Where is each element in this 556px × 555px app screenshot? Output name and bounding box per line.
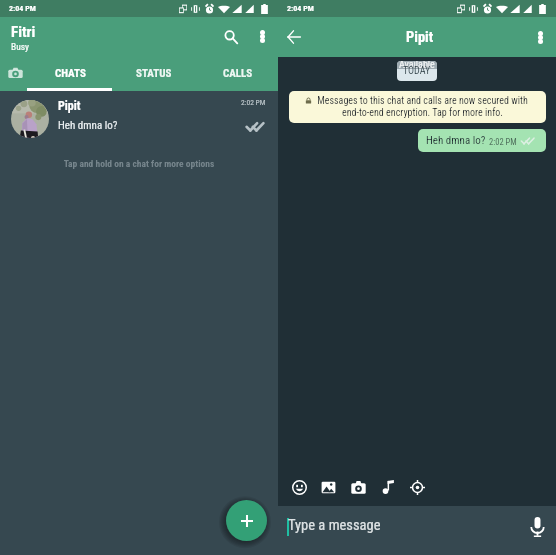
button[interactable]: Messages to this chat and calls are now … [289, 91, 546, 123]
staticText: CALLS [223, 67, 253, 80]
button[interactable]: STATUS [126, 60, 182, 86]
button[interactable]: Heh dmna lo? [418, 129, 546, 152]
staticText: Fitri [11, 23, 36, 41]
button[interactable]: Audio [377, 476, 399, 498]
staticText: 2:04 PM [9, 4, 36, 13]
staticText: Type a message [288, 517, 381, 534]
button[interactable]: Location [406, 476, 428, 498]
button[interactable]: Gallery [317, 476, 339, 498]
button[interactable]: CALLS [211, 60, 265, 86]
staticText: STATUS [136, 67, 172, 80]
staticText: TODAY [403, 65, 431, 77]
staticText: Busy [11, 41, 30, 52]
button[interactable]: Emoji [288, 476, 310, 498]
button[interactable]: Pipit [0, 91, 278, 139]
staticText: Tap and hold on a chat for more options [0, 158, 278, 169]
button[interactable]: CHATS [43, 60, 97, 86]
staticText: Pipit [58, 99, 81, 113]
button[interactable]: More options [250, 24, 274, 48]
button[interactable]: Search [219, 25, 243, 49]
button[interactable]: More options [528, 25, 552, 49]
button[interactable]: New chat [226, 500, 267, 541]
staticText: 2:02 PM [241, 98, 266, 107]
staticText: Heh dmna lo? [426, 134, 486, 147]
button[interactable]: Back [281, 24, 307, 50]
staticText: Heh dmna lo? [58, 119, 118, 132]
staticText: Pipit [406, 29, 434, 46]
button[interactable]: Camera [347, 476, 369, 498]
staticText: CHATS [55, 67, 86, 80]
staticText: 2:02 PM [489, 137, 517, 147]
button[interactable]: Available [397, 61, 437, 81]
staticText: Available [399, 61, 435, 71]
staticText: Messages to this chat and calls are now … [294, 95, 546, 119]
button[interactable]: Voice message [526, 512, 548, 541]
staticText: 2:04 PM [287, 4, 314, 13]
button[interactable]: Camera [3, 61, 27, 85]
